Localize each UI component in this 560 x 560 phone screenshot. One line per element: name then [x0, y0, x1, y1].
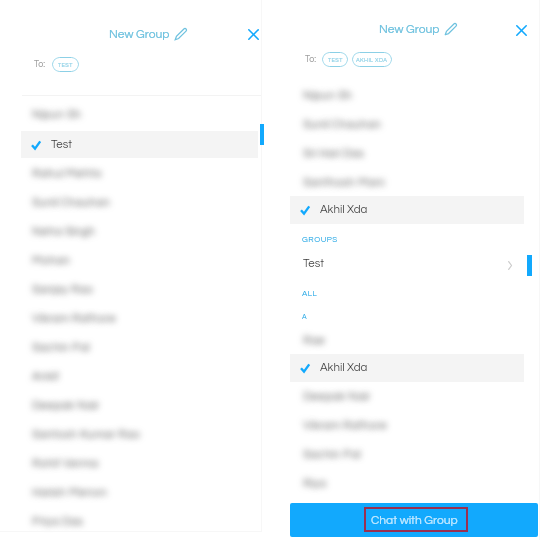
staticText: Test — [303, 258, 325, 270]
staticText: A — [302, 313, 307, 320]
button[interactable]: Akhil Xda — [290, 354, 524, 382]
staticText: ALL — [302, 289, 318, 297]
button[interactable]: Chat with Group — [290, 503, 538, 537]
staticText: Chat with Group — [371, 514, 458, 526]
button[interactable]: AKHIL XDA — [352, 52, 392, 67]
staticText: To: — [34, 60, 46, 69]
staticText: GROUPS — [302, 235, 338, 243]
button[interactable]: New Group — [379, 23, 457, 35]
staticText: AKHIL XDA — [356, 57, 388, 63]
staticText: TEST — [58, 62, 73, 68]
staticText: TEST — [328, 57, 343, 63]
button[interactable]: New Group — [109, 28, 187, 40]
staticText: Akhil Xda — [320, 204, 368, 216]
button[interactable]: Close — [511, 20, 532, 41]
button[interactable]: Test — [290, 252, 524, 276]
staticText: New Group — [379, 23, 440, 35]
staticText: New Group — [109, 28, 170, 40]
staticText: Akhil Xda — [320, 362, 368, 374]
button[interactable]: Test — [21, 131, 258, 158]
button[interactable]: Close — [243, 24, 264, 45]
staticText: To: — [305, 55, 317, 64]
staticText: Test — [51, 139, 73, 151]
button[interactable]: TEST — [52, 57, 79, 72]
button[interactable]: TEST — [322, 52, 348, 67]
button[interactable]: Akhil Xda — [290, 196, 524, 224]
